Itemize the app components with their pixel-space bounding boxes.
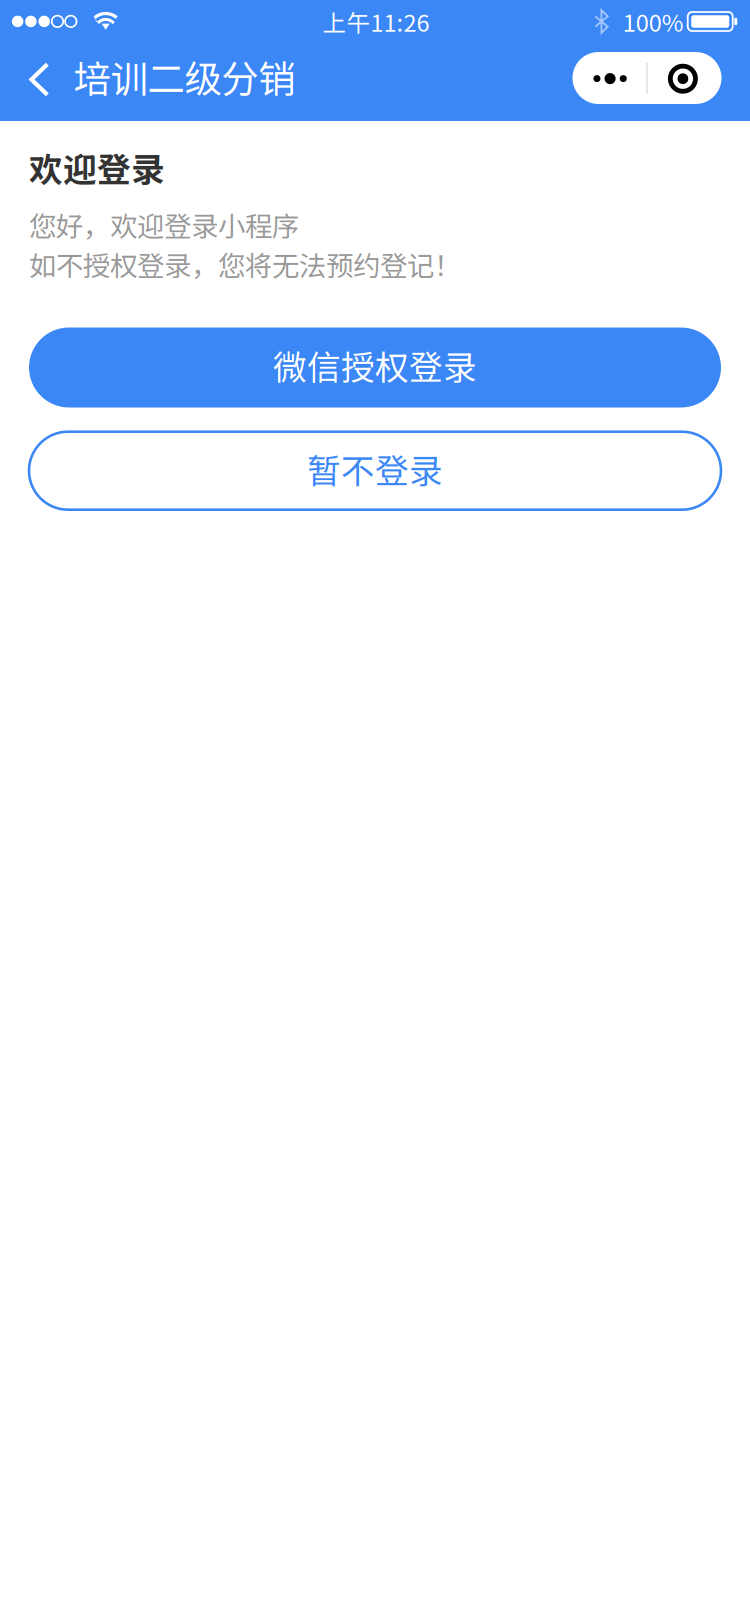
- button[interactable]: 微信授权登录: [29, 327, 721, 407]
- staticText: 如不授权登录，您将无法预约登记！: [29, 244, 461, 284]
- staticText: 您好，欢迎登录小程序: [29, 205, 299, 244]
- button[interactable]: 暂不登录: [29, 432, 721, 510]
- staticText: 微信授权登录: [273, 341, 477, 389]
- staticText: 欢迎登录: [29, 143, 165, 192]
- staticText: 培训二级分销: [74, 49, 296, 103]
- button[interactable]: Back: [11, 43, 67, 116]
- staticText: 暂不登录: [307, 444, 443, 493]
- staticText: 上午11:26: [322, 4, 429, 38]
- staticText: 100%: [623, 4, 684, 38]
- button[interactable]: More options: [566, 41, 727, 114]
